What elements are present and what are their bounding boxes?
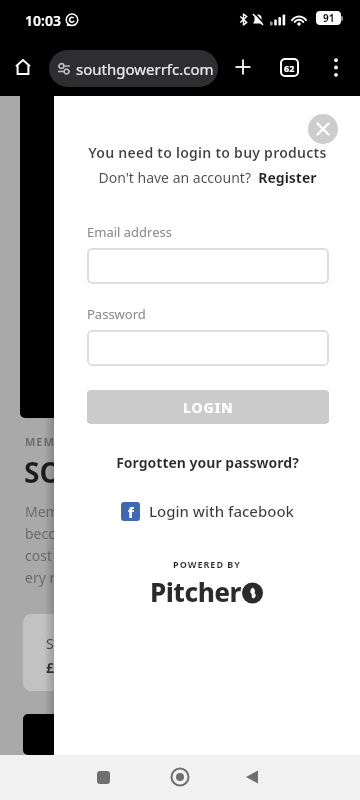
button[interactable] [87, 248, 329, 284]
staticText: LOGIN [183, 398, 234, 417]
staticText: POWERED BY [173, 558, 241, 570]
button[interactable]: 62 [280, 58, 299, 77]
staticText: 10:03 [25, 11, 61, 30]
button[interactable]: f [54, 501, 360, 521]
staticText: Don't have an account? Register [98, 168, 317, 187]
staticText: cost of the membership [25, 546, 182, 565]
staticText: You need to login to buy products [88, 143, 327, 162]
button[interactable] [87, 330, 329, 366]
staticText: Forgotten your password? [116, 453, 299, 472]
staticText: MEMBERSHIP [25, 434, 109, 449]
button[interactable] [167, 764, 193, 790]
staticText: become a member, the [25, 524, 176, 543]
staticText: 91 [323, 11, 335, 25]
staticText: SOUTH [24, 453, 121, 491]
button[interactable] [90, 764, 116, 790]
button[interactable]: LOGIN [87, 390, 329, 424]
button[interactable] [14, 58, 32, 76]
staticText: ery renewal [25, 568, 102, 587]
staticText: Login with facebook [149, 501, 294, 521]
staticText: £1 [46, 658, 63, 677]
button[interactable] [239, 764, 265, 790]
staticText: Membership of South [25, 502, 168, 521]
button[interactable] [235, 59, 251, 75]
button[interactable]: Forgotten your password? [54, 453, 360, 472]
staticText: Se [46, 634, 62, 653]
staticText: f [128, 502, 134, 521]
button[interactable] [331, 58, 341, 77]
button[interactable] [308, 114, 338, 144]
staticText: southgowerrfc.com [76, 59, 214, 79]
staticText: Password [87, 305, 146, 323]
staticText: Pitcher [150, 574, 241, 609]
staticText: 62 [284, 62, 295, 74]
staticText: Email address [87, 223, 172, 241]
button[interactable]: southgowerrfc.com [49, 50, 218, 87]
